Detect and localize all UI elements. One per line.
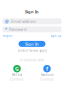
staticText: Continue <box>10 78 24 81</box>
staticText: WeChat <box>12 73 22 77</box>
staticText: Sign up <box>50 34 61 38</box>
staticText: Email address <box>11 19 36 24</box>
staticText: Forgot? <box>2 34 12 38</box>
staticText: Sign In <box>25 9 39 14</box>
staticText: or continue with <box>20 58 44 62</box>
button[interactable]: Forgot? <box>2 34 12 38</box>
staticText: Password <box>9 27 26 32</box>
staticText: Sign In <box>25 41 39 46</box>
staticText: f <box>46 65 48 72</box>
staticText: G <box>15 65 19 72</box>
staticText: Facebook <box>41 73 53 77</box>
button[interactable]: Sign up <box>50 34 61 38</box>
staticText: * <box>5 27 7 32</box>
button[interactable]: f <box>38 65 56 81</box>
button[interactable]: Sign In <box>18 41 45 47</box>
button[interactable]: G <box>8 65 26 81</box>
staticText: Terms of Service apply <box>17 49 46 52</box>
staticText: @ <box>5 19 9 24</box>
staticText: Continue <box>40 78 54 81</box>
